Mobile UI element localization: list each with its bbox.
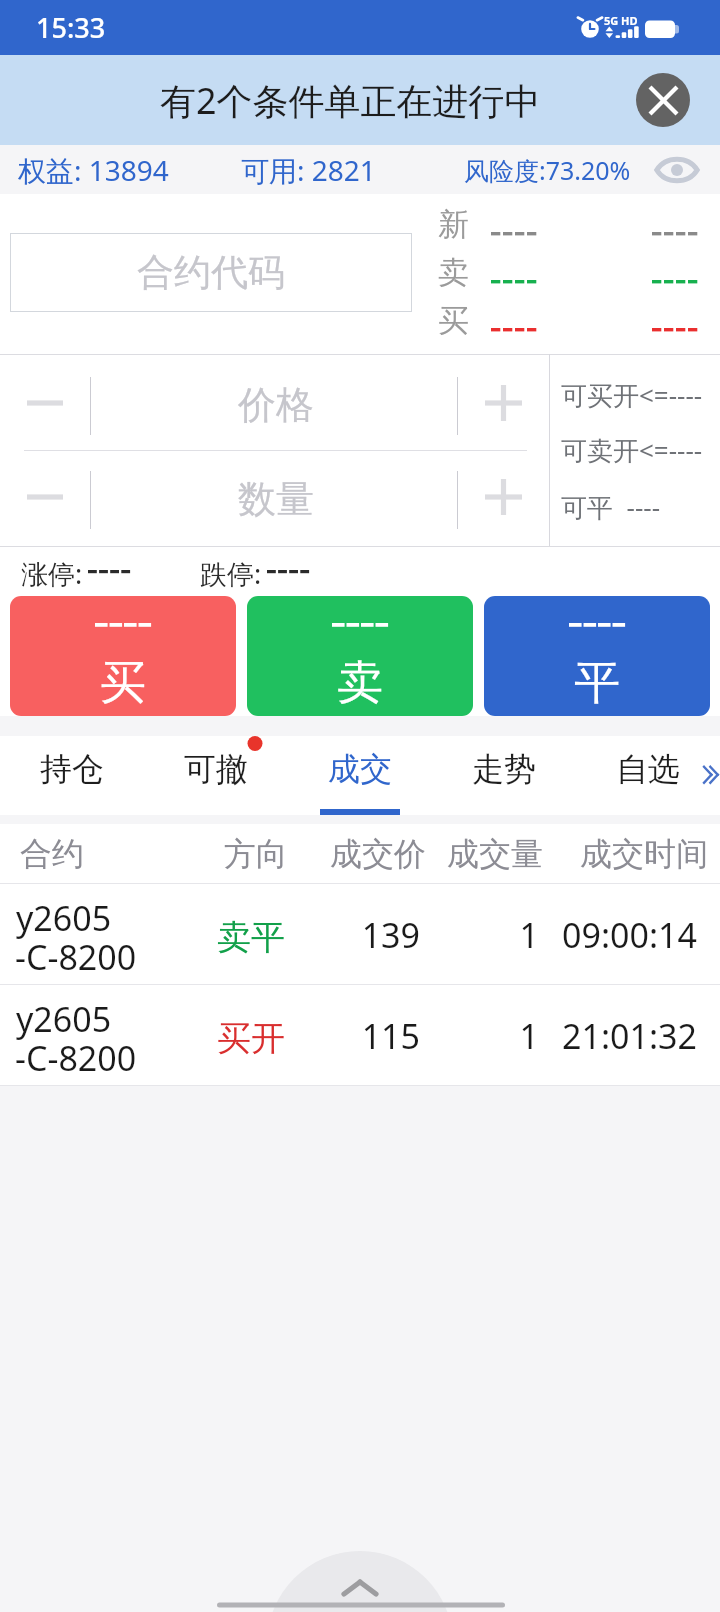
button[interactable]: Increase 数量 — [458, 450, 549, 544]
staticText: 合约 — [20, 834, 84, 874]
button[interactable]: Toggle balance visibility — [645, 145, 709, 194]
button[interactable]: 可撤 — [144, 736, 288, 815]
staticText: 合约代码 — [137, 249, 285, 296]
button[interactable]: 卖 — [247, 596, 473, 716]
button[interactable]: y2605 — [0, 884, 720, 985]
button[interactable]: 价格 — [93, 358, 459, 452]
button[interactable]: 成交 — [288, 736, 432, 815]
staticText: -C-8200 — [15, 934, 137, 980]
staticText: 卖平 — [217, 916, 285, 959]
staticText: 成交 — [328, 749, 392, 789]
staticText: -C-8200 — [15, 1035, 137, 1081]
staticText: 自选 — [616, 749, 680, 789]
staticText: 价格 — [238, 381, 314, 429]
staticText: 风险度:73.20% — [464, 153, 631, 187]
button[interactable]: y2605 — [0, 985, 720, 1086]
button[interactable]: 合约代码 — [10, 233, 412, 312]
button[interactable]: Close — [636, 73, 690, 127]
staticText: 成交量 — [447, 834, 543, 874]
staticText: 买 — [100, 654, 146, 712]
staticText: 方向 — [224, 834, 288, 874]
staticText: y2605 — [16, 996, 112, 1042]
staticText: 新 — [438, 205, 469, 244]
staticText: 5G HD — [604, 13, 638, 28]
staticText: 可卖开<=---- — [561, 432, 703, 468]
button[interactable]: 持仓 — [0, 736, 144, 815]
staticText: 15:33 — [36, 9, 106, 46]
button[interactable]: 数量 — [93, 452, 459, 546]
staticText: 09:00:14 — [562, 912, 697, 958]
staticText: 权益: 13894 — [18, 151, 169, 189]
staticText: 涨停: — [21, 555, 83, 592]
button[interactable]: Increase 价格 — [458, 356, 549, 450]
staticText: 卖 — [337, 654, 383, 712]
button[interactable]: 自选 — [576, 736, 720, 815]
staticText: 数量 — [238, 475, 314, 523]
staticText: 走势 — [472, 749, 536, 789]
staticText: 平 — [574, 654, 620, 712]
button[interactable]: 走势 — [432, 736, 576, 815]
staticText: 1 — [439, 1013, 539, 1059]
staticText: 买开 — [217, 1017, 285, 1060]
staticText: 可撤 — [184, 749, 248, 789]
staticText: 1 — [439, 912, 539, 958]
button[interactable]: 平 — [484, 596, 710, 716]
staticText: 买 — [438, 301, 469, 340]
staticText: 有2个条件单正在进行中 — [160, 76, 541, 125]
button[interactable]: Decrease 价格 — [0, 356, 90, 450]
staticText: 成交时间 — [580, 834, 708, 874]
staticText: y2605 — [16, 895, 112, 941]
staticText: 可用: 2821 — [241, 151, 376, 189]
button[interactable]: 买 — [10, 596, 236, 716]
staticText: 可平 ---- — [561, 489, 661, 525]
staticText: 21:01:32 — [562, 1013, 697, 1059]
button[interactable]: More tabs — [692, 756, 720, 794]
staticText: 可买开<=---- — [561, 377, 703, 413]
staticText: 跌停: — [200, 555, 262, 592]
staticText: 成交价 — [330, 834, 426, 874]
button[interactable]: Decrease 数量 — [0, 450, 90, 544]
staticText: 115 — [320, 1013, 420, 1059]
staticText: 持仓 — [40, 749, 104, 789]
staticText: 卖 — [438, 253, 469, 292]
staticText: 139 — [320, 912, 420, 958]
